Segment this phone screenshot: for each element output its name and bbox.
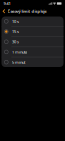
button[interactable]: 10 s	[1, 16, 63, 26]
button[interactable]: 5 minut	[1, 57, 63, 67]
staticText: 10 s	[12, 19, 19, 24]
button[interactable]: 15 s	[1, 27, 63, 36]
staticText: 9:41	[3, 1, 10, 6]
staticText: 30 s	[12, 39, 19, 44]
staticText: 1 minuta	[12, 49, 27, 55]
button[interactable]: 30 s	[1, 37, 63, 47]
button[interactable]: Back	[0, 7, 7, 15]
staticText: 15 s	[12, 29, 19, 34]
staticText: Časový limit displeje	[7, 9, 46, 14]
button[interactable]: 1 minuta	[1, 47, 63, 57]
staticText: 5 minut	[12, 59, 25, 65]
